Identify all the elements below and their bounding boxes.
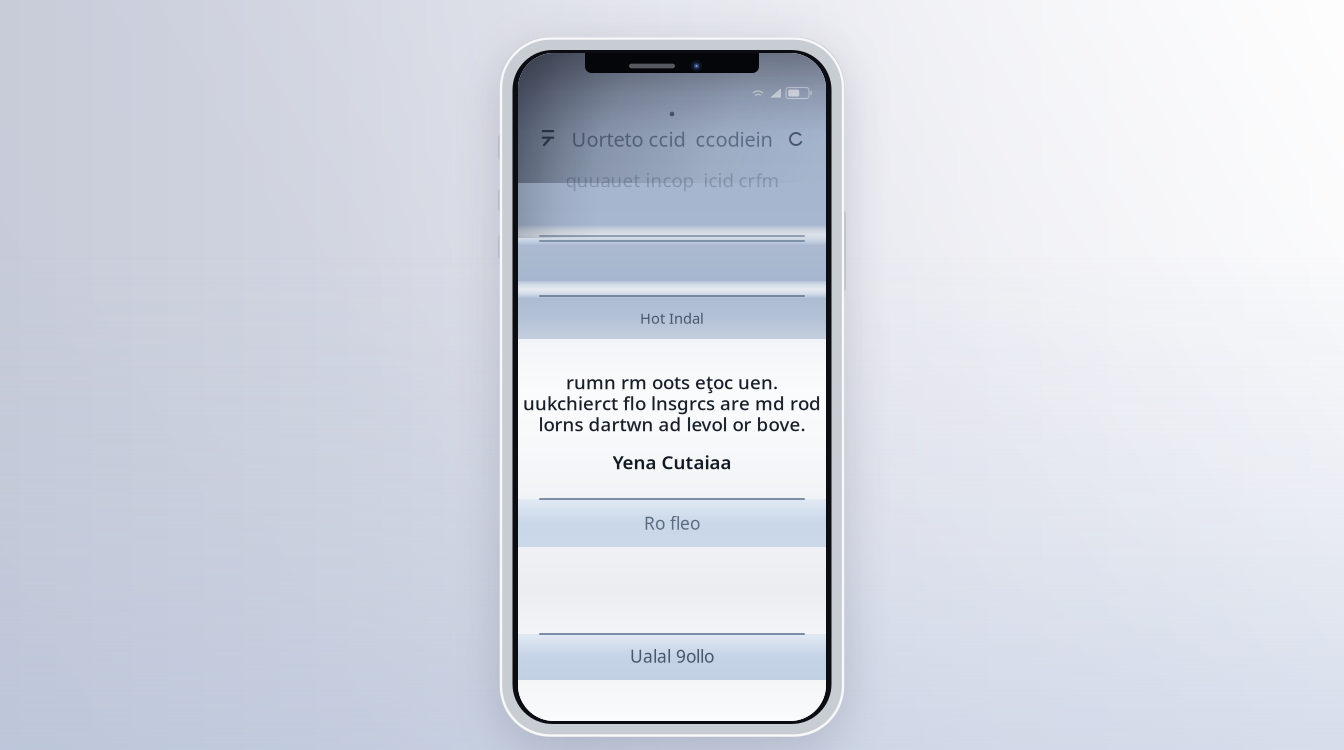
button[interactable]: Back [527, 125, 569, 153]
staticText: Yena Cutaiaa [612, 450, 731, 474]
staticText: Ualal 9ollo [630, 644, 714, 667]
staticText: rumn rm oots eţoc uen. [566, 370, 778, 394]
button[interactable]: Refresh [775, 125, 817, 153]
staticText: Hot Indal [640, 308, 704, 328]
staticText: Ro fleo [644, 511, 700, 534]
staticText: Uorteto ccid ccodiein [571, 126, 772, 152]
staticText: lorns dartwn ad levol or bove. [538, 412, 805, 436]
staticText: quuauet incop icid crfm [565, 168, 778, 192]
staticText: uukchierct flo lnsgrcs are md rod [523, 391, 821, 415]
